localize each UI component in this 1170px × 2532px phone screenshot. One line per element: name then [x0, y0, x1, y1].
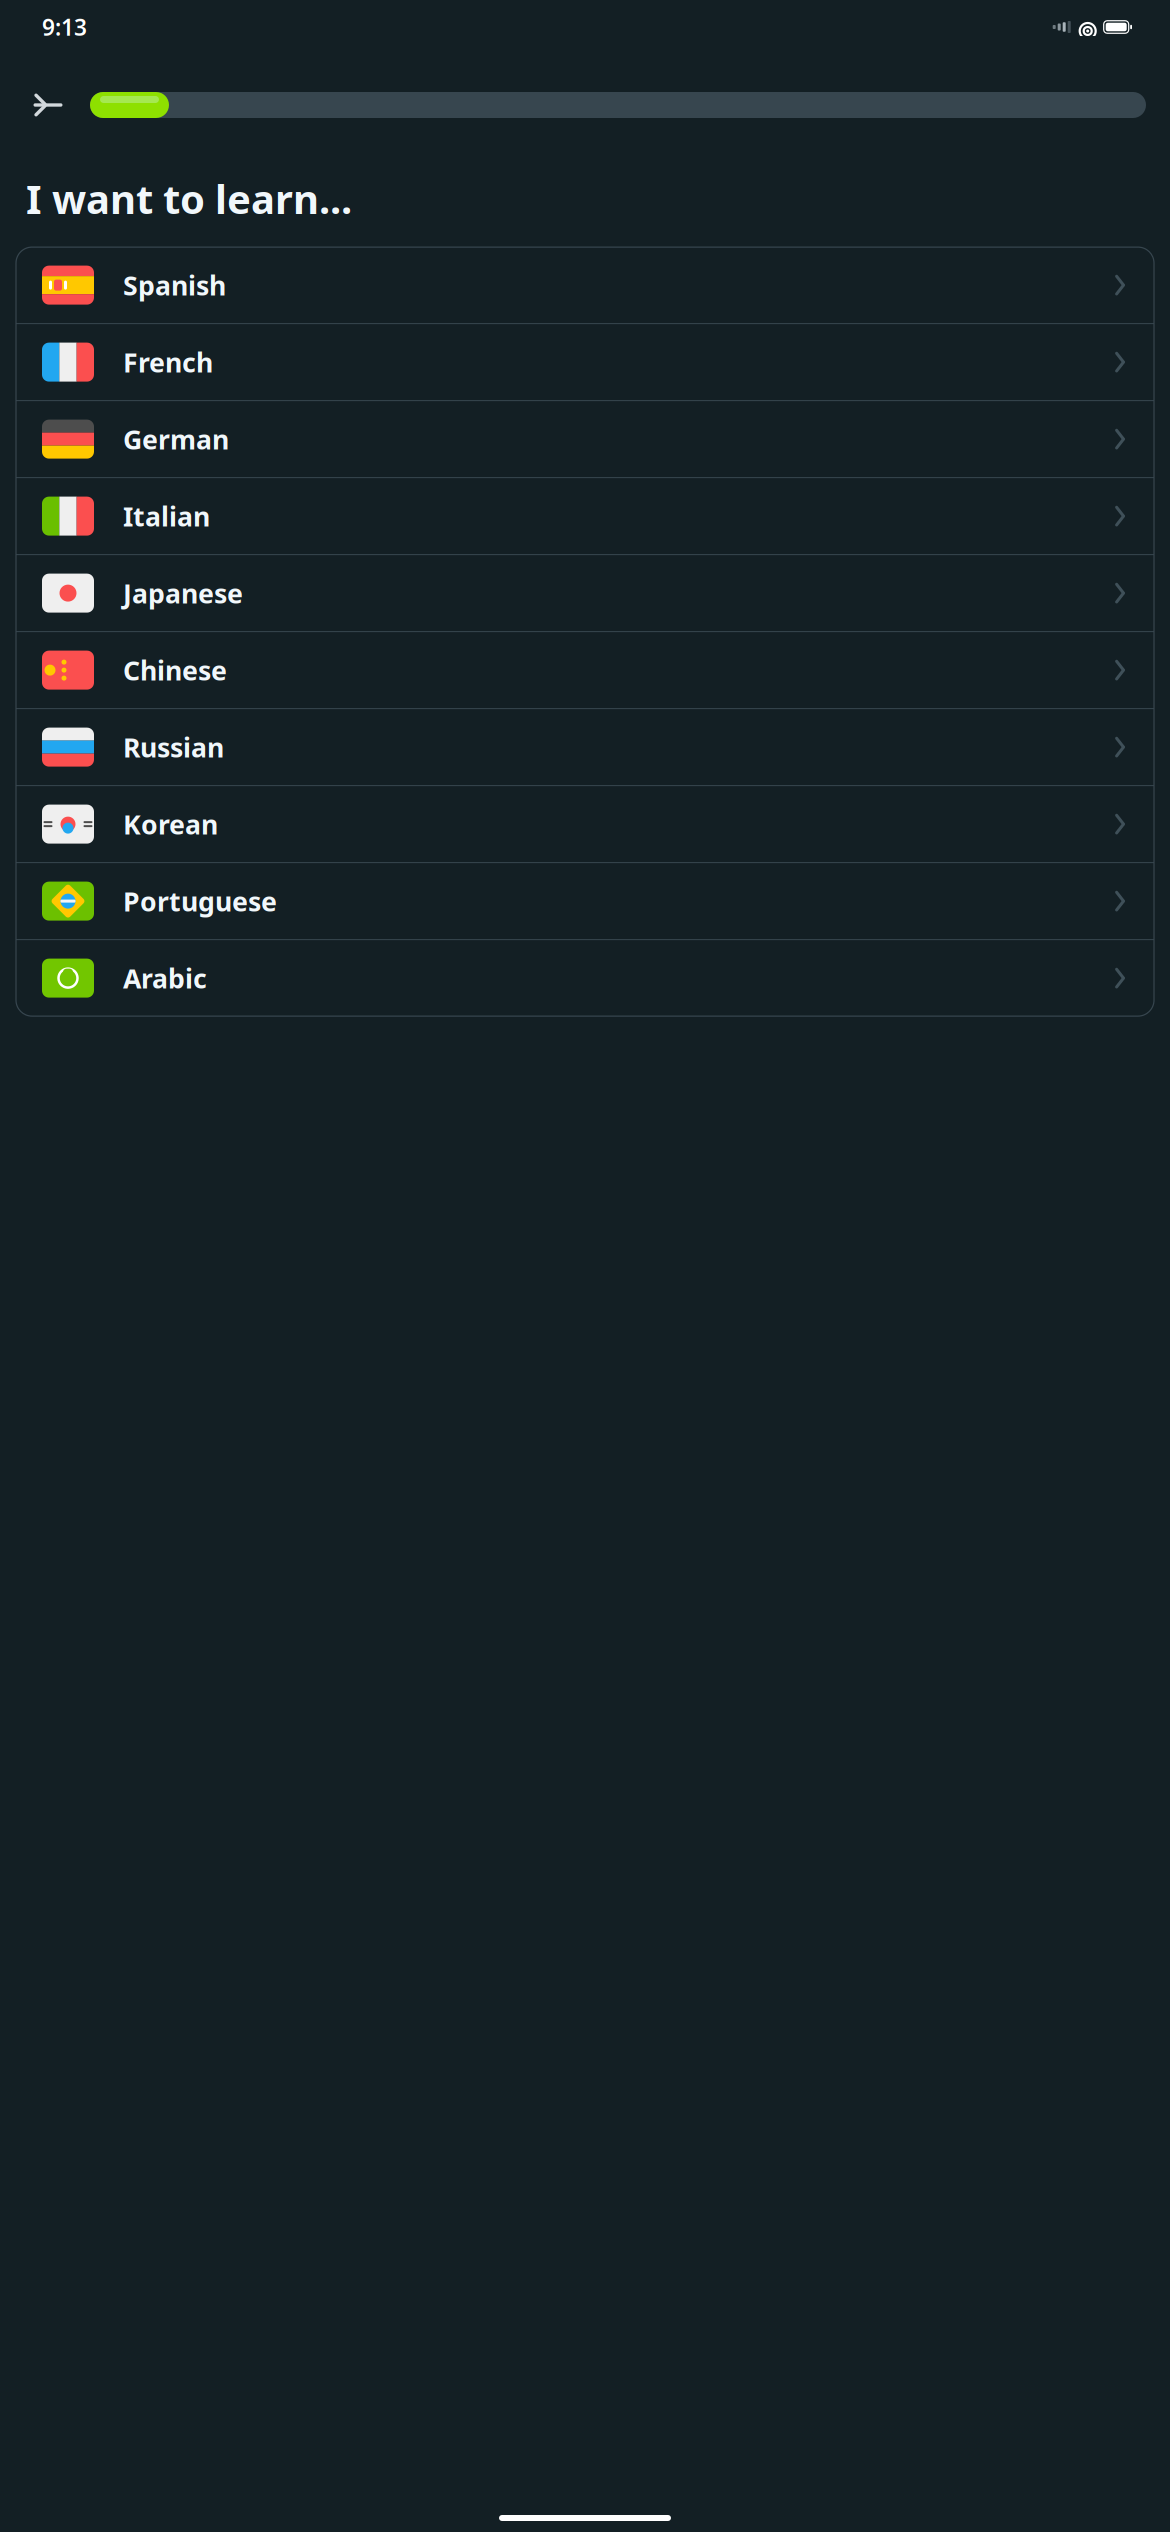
button[interactable]: Korean — [16, 786, 1154, 862]
staticText: Italian — [123, 498, 210, 534]
staticText: Korean — [123, 806, 218, 842]
staticText: French — [123, 344, 213, 380]
button[interactable]: Portuguese — [16, 863, 1154, 939]
button[interactable]: Chinese — [16, 632, 1154, 708]
button[interactable]: Japanese — [16, 555, 1154, 631]
button[interactable]: Arabic — [16, 940, 1154, 1016]
staticText: Japanese — [123, 575, 243, 611]
staticText: 9:13 — [42, 12, 87, 42]
button[interactable]: French — [16, 324, 1154, 400]
staticText: Russian — [123, 729, 224, 765]
button[interactable]: Back — [22, 83, 74, 127]
staticText: Arabic — [123, 960, 207, 996]
staticText: Chinese — [123, 652, 227, 688]
button[interactable]: Spanish — [16, 247, 1154, 323]
staticText: Portuguese — [123, 883, 277, 919]
staticText: I want to learn... — [26, 172, 352, 225]
button[interactable]: German — [16, 401, 1154, 477]
staticText: German — [123, 421, 229, 457]
button[interactable]: Italian — [16, 478, 1154, 554]
staticText: Spanish — [123, 267, 226, 303]
button[interactable]: Russian — [16, 709, 1154, 785]
